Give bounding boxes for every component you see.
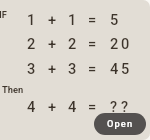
staticText: ?	[110, 98, 118, 115]
staticText: =	[88, 98, 97, 115]
staticText: IF	[0, 9, 7, 20]
staticText: 1	[27, 11, 36, 28]
staticText: 4	[27, 98, 36, 115]
staticText: Open	[107, 118, 134, 129]
staticText: =	[88, 60, 97, 77]
staticText: =	[88, 35, 97, 52]
staticText: 2	[68, 35, 77, 52]
staticText: Then	[2, 84, 24, 95]
staticText: 3	[27, 60, 36, 77]
staticText: +	[48, 98, 57, 115]
button[interactable]: Open	[94, 113, 146, 135]
staticText: =	[88, 11, 97, 28]
staticText: +	[48, 35, 57, 52]
staticText: 5	[121, 60, 130, 77]
staticText: 5	[110, 11, 119, 28]
staticText: 2	[27, 35, 36, 52]
staticText: 3	[68, 60, 77, 77]
staticText: ?	[121, 98, 129, 115]
staticText: +	[48, 60, 57, 77]
staticText: 4	[110, 60, 119, 77]
staticText: 0	[121, 35, 130, 52]
staticText: 2	[110, 35, 119, 52]
staticText: +	[48, 11, 57, 28]
staticText: 4	[68, 98, 77, 115]
staticText: 1	[68, 11, 77, 28]
